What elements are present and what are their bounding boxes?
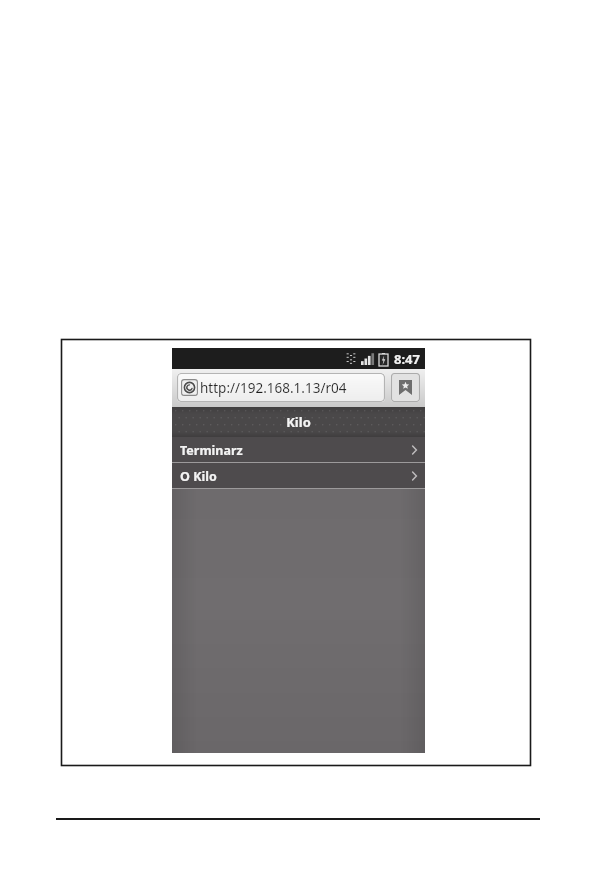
button[interactable]: Bookmarks: [391, 373, 420, 402]
staticText: Kilo: [286, 413, 311, 431]
staticText: http://192.168.1.13/r04: [200, 379, 347, 397]
staticText: O Kilo: [180, 468, 217, 485]
button[interactable]: Terminarz: [172, 437, 425, 463]
button[interactable]: O Kilo: [172, 463, 425, 489]
staticText: 8:47: [394, 350, 420, 368]
button[interactable]: http://192.168.1.13/r04: [177, 373, 385, 402]
staticText: Terminarz: [180, 442, 243, 459]
